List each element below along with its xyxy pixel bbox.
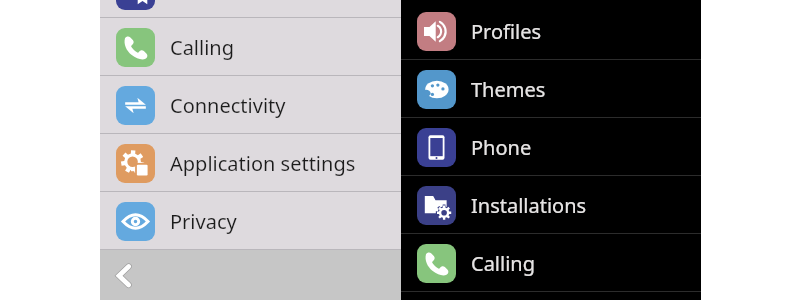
staticText: Calling: [170, 34, 234, 61]
staticText: Installations: [471, 192, 587, 219]
staticText: Privacy: [170, 208, 237, 235]
staticText: Themes: [471, 76, 546, 103]
button[interactable]: Connectivity: [100, 76, 401, 134]
button[interactable]: Phone: [401, 118, 701, 176]
staticText: Profiles: [471, 18, 542, 45]
button[interactable]: Profiles: [401, 2, 701, 60]
button[interactable]: Calling: [401, 234, 701, 292]
button[interactable]: Privacy: [100, 192, 401, 250]
button[interactable]: Installations: [401, 176, 701, 234]
staticText: Phone: [471, 134, 532, 161]
button[interactable]: Calling: [100, 18, 401, 76]
staticText: Application settings: [170, 150, 356, 177]
button[interactable]: [100, 0, 401, 18]
button[interactable]: Application settings: [100, 134, 401, 192]
button[interactable]: Themes: [401, 60, 701, 118]
button[interactable]: Back: [102, 252, 148, 298]
staticText: Connectivity: [170, 92, 286, 119]
staticText: Calling: [471, 250, 535, 277]
